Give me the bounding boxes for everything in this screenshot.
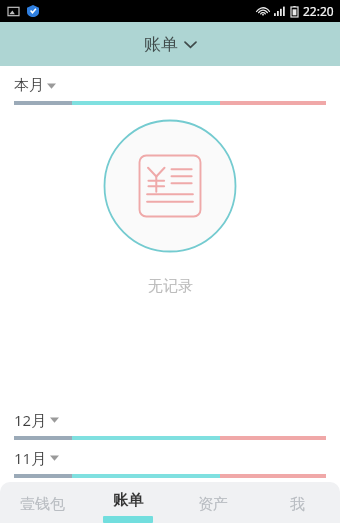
button[interactable]: 壹钱包 bbox=[0, 482, 85, 523]
button[interactable]: 我 bbox=[255, 482, 340, 523]
staticText: 资产 bbox=[198, 495, 228, 514]
staticText: 壹钱包 bbox=[20, 495, 65, 514]
staticText: 11月 bbox=[14, 448, 47, 468]
staticText: 本月 bbox=[14, 76, 44, 95]
staticText: 无记录 bbox=[148, 277, 193, 296]
button[interactable]: 本月 bbox=[0, 76, 340, 105]
button[interactable]: 资产 bbox=[170, 482, 255, 523]
staticText: 22:20 bbox=[303, 3, 334, 19]
button[interactable]: 11月 bbox=[0, 448, 340, 478]
staticText: 账单 bbox=[144, 34, 178, 55]
button[interactable]: 12月 bbox=[0, 410, 340, 440]
staticText: 12月 bbox=[14, 410, 47, 430]
staticText: 账单 bbox=[113, 491, 143, 510]
button[interactable]: 账单 bbox=[85, 482, 170, 523]
staticText: 我 bbox=[290, 495, 305, 514]
button[interactable]: 账单 bbox=[0, 22, 340, 66]
